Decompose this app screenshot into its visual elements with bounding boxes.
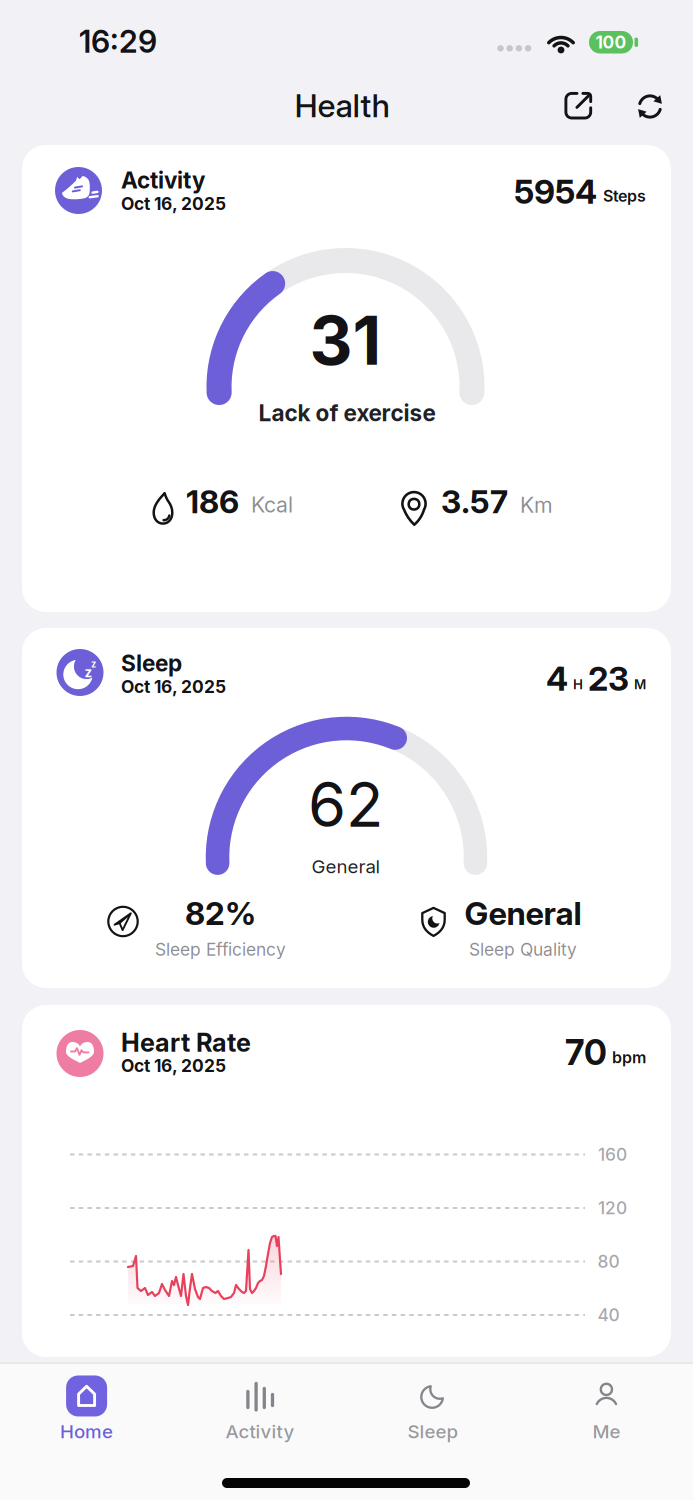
button[interactable]: Me <box>526 1376 686 1442</box>
staticText: Lack of exercise <box>258 400 435 426</box>
staticText: 120 <box>598 1198 627 1218</box>
staticText: 23 <box>588 659 629 698</box>
staticText: 70 <box>565 1032 607 1073</box>
staticText: 5954 <box>514 172 597 211</box>
button[interactable]: Share <box>563 91 593 121</box>
staticText: 62 <box>308 768 383 841</box>
staticText: z <box>84 664 92 680</box>
staticText: H <box>573 677 583 692</box>
staticText: 16:29 <box>79 23 157 60</box>
staticText: 160 <box>598 1144 627 1165</box>
staticText: 4 <box>546 659 568 698</box>
staticText: 3.57 <box>441 483 508 520</box>
staticText: 80 <box>597 1251 619 1272</box>
staticText: Oct 16, 2025 <box>121 193 226 214</box>
staticText: Sleep <box>408 1420 459 1442</box>
staticText: Home <box>60 1420 113 1442</box>
staticText: bpm <box>612 1048 646 1067</box>
staticText: Steps <box>603 186 646 205</box>
staticText: 100 <box>595 32 626 52</box>
staticText: 82% <box>185 894 256 932</box>
staticText: General <box>311 855 380 877</box>
staticText: z <box>91 658 96 669</box>
staticText: 31 <box>309 301 381 380</box>
staticText: Sleep <box>121 650 182 677</box>
staticText: Km <box>520 492 553 517</box>
staticText: Kcal <box>251 492 293 517</box>
button[interactable]: Activity <box>180 1376 340 1442</box>
staticText: Activity <box>121 167 205 194</box>
staticText: M <box>634 677 646 692</box>
staticText: 40 <box>597 1305 619 1325</box>
staticText: Oct 16, 2025 <box>121 1055 226 1076</box>
staticText: Activity <box>225 1420 294 1442</box>
button[interactable]: Refresh <box>635 91 665 121</box>
button[interactable]: Home <box>7 1376 167 1442</box>
staticText: Sleep Quality <box>469 939 577 960</box>
staticText: Health <box>294 87 390 124</box>
staticText: Heart Rate <box>121 1027 251 1057</box>
button[interactable]: Sleep <box>353 1376 513 1442</box>
staticText: 186 <box>186 483 239 520</box>
staticText: Me <box>592 1420 620 1442</box>
staticText: Sleep Efficiency <box>155 939 286 960</box>
staticText: Oct 16, 2025 <box>121 676 226 697</box>
staticText: General <box>464 894 581 932</box>
